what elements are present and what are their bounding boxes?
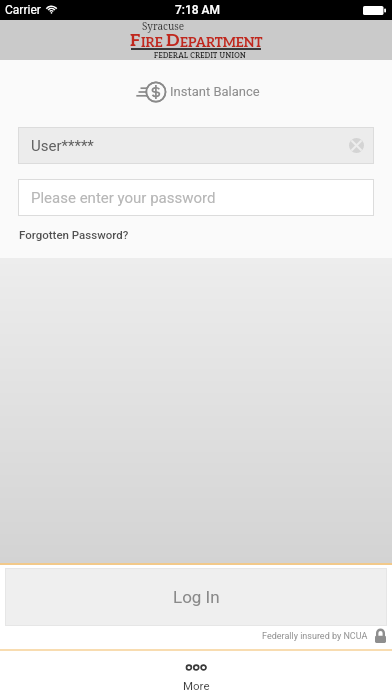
- staticText: Federally insured by NCUA: [262, 631, 368, 642]
- button[interactable]: Forgotten Password?: [19, 228, 129, 241]
- staticText: Carrier: [5, 3, 41, 17]
- staticText: F: [130, 30, 141, 51]
- button[interactable]: Log In: [5, 568, 387, 626]
- button[interactable]: Clear username: [349, 138, 364, 153]
- staticText: Log In: [173, 587, 220, 607]
- button[interactable]: More: [156, 651, 236, 696]
- staticText: Syracuse: [142, 19, 185, 33]
- button[interactable]: User*****: [18, 127, 374, 164]
- staticText: Instant Balance: [170, 84, 260, 99]
- staticText: IRE: [141, 35, 166, 51]
- staticText: User*****: [31, 137, 94, 155]
- staticText: EPARTMENT: [180, 35, 263, 51]
- staticText: More: [183, 679, 210, 692]
- button[interactable]: Please enter your password: [18, 179, 374, 216]
- staticText: 7:18 AM: [175, 3, 221, 17]
- staticText: FEDERAL CREDIT UNION: [154, 52, 246, 60]
- button[interactable]: Instant Balance: [0, 80, 392, 103]
- staticText: Please enter your password: [31, 189, 216, 207]
- staticText: D: [166, 30, 180, 51]
